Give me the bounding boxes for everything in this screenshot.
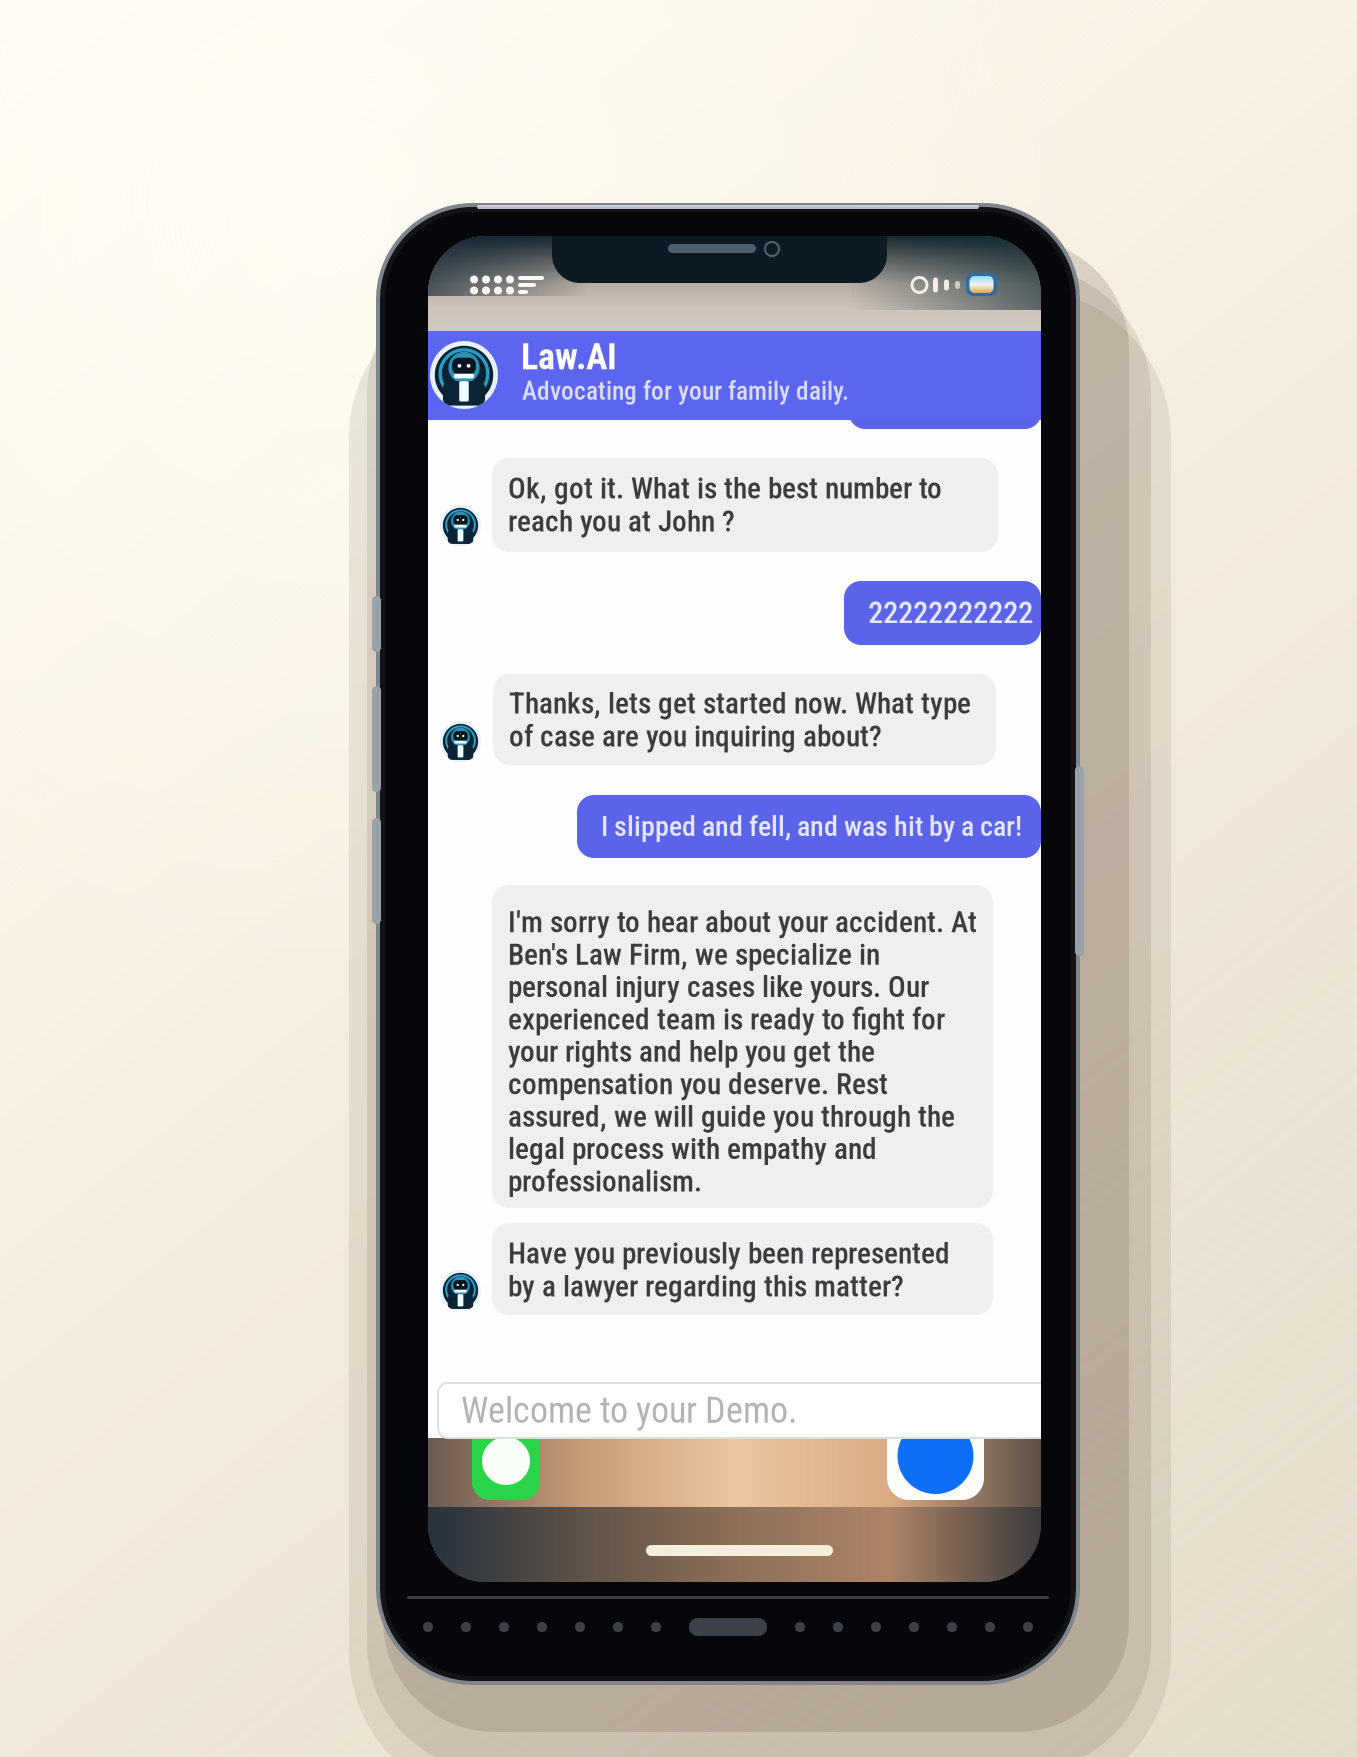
staticText: of case are you inquiring about? [509, 719, 882, 754]
staticText: 22222222222 [868, 595, 1033, 631]
staticText: legal process with empathy and [508, 1132, 877, 1166]
staticText: reach you at John ? [508, 504, 735, 539]
staticText: I'm sorry to hear about your accident. A… [508, 905, 977, 939]
staticText: I slipped and fell, and was hit by a car… [601, 810, 1022, 843]
staticText: compensation you deserve. Rest [508, 1067, 888, 1101]
staticText: Ok, got it. What is the best number to [508, 471, 942, 506]
staticText: Have you previously been represented [508, 1236, 950, 1271]
staticText: Law.AI [521, 336, 617, 378]
staticText: Advocating for your family daily. [522, 376, 849, 406]
staticText: Thanks, lets get started now. What type [509, 686, 971, 721]
staticText: professionalism. [508, 1164, 702, 1199]
staticText: experienced team is ready to fight for [508, 1002, 945, 1037]
staticText: your rights and help you get the [508, 1035, 875, 1069]
staticText: Ben's Law Firm, we specialize in [508, 937, 880, 972]
staticText: assured, we will guide you through the [508, 1099, 955, 1134]
staticText: personal injury cases like yours. Our [508, 970, 929, 1004]
staticText: Welcome to your Demo. [461, 1389, 797, 1432]
staticText: by a lawyer regarding this matter? [508, 1269, 904, 1304]
